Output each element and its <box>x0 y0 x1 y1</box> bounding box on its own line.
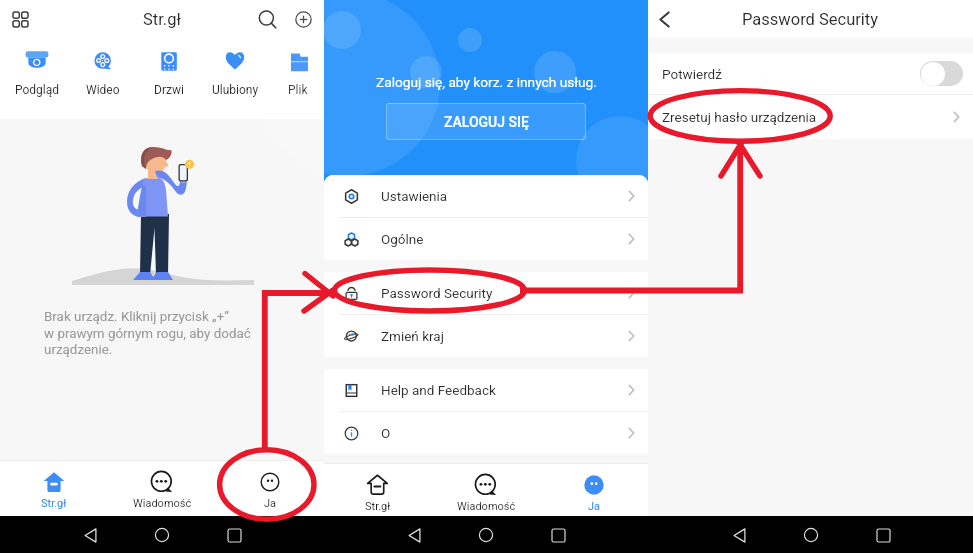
staticText: Podgląd <box>15 83 60 97</box>
staticText: Password Security <box>381 285 629 301</box>
staticText: Ulubiony <box>212 83 259 97</box>
button[interactable]: Ja <box>540 464 648 516</box>
button[interactable]: Podgląd <box>4 38 70 97</box>
button[interactable]: Recents <box>868 520 898 550</box>
button[interactable]: Str.gł <box>0 461 108 516</box>
button[interactable]: Add device <box>285 1 321 37</box>
button[interactable]: Ulubiony <box>202 38 268 97</box>
button[interactable]: Password Security <box>324 272 648 314</box>
staticText: Brak urządz. Kliknij przycisk „+” w praw… <box>44 309 251 357</box>
button[interactable]: Plik <box>268 38 328 97</box>
staticText: Str.gł <box>41 497 67 510</box>
button[interactable]: O <box>324 412 648 454</box>
staticText: Zaloguj się, aby korz. z innych usług. <box>376 74 597 90</box>
button[interactable]: Wideo <box>70 38 136 97</box>
staticText: Wideo <box>86 83 120 97</box>
staticText: Zresetuj hasło urządzenia <box>662 109 954 125</box>
staticText: Wiadomość <box>133 497 192 510</box>
button[interactable]: Ogólne <box>324 218 648 260</box>
button[interactable]: Back <box>399 520 429 550</box>
button[interactable]: Help and Feedback <box>324 369 648 411</box>
staticText: Drzwi <box>154 83 184 97</box>
staticText: Ja <box>588 500 601 513</box>
button[interactable]: Search <box>249 1 285 37</box>
button[interactable]: Zmień kraj <box>324 315 648 357</box>
button[interactable]: Ustawienia <box>324 175 648 217</box>
staticText: Plik <box>288 83 308 97</box>
staticText: Ogólne <box>381 231 629 247</box>
staticText: Str.gł <box>365 500 391 513</box>
button[interactable]: Wiadomość <box>108 461 216 516</box>
button[interactable]: Potwierdź toggle <box>920 61 963 86</box>
button[interactable]: Back <box>724 520 754 550</box>
staticText: ZALOGUJ SIĘ <box>444 114 529 130</box>
button[interactable]: Str.gł <box>324 464 432 516</box>
button[interactable]: Home <box>147 520 177 550</box>
button[interactable]: Wiadomość <box>432 464 540 516</box>
staticText: Ja <box>264 497 277 510</box>
staticText: Str.gł <box>143 10 181 29</box>
button[interactable]: Back <box>648 3 680 35</box>
staticText: O <box>381 425 629 441</box>
button[interactable]: Drzwi <box>136 38 202 97</box>
staticText: Potwierdź <box>662 66 920 82</box>
button[interactable]: Recents <box>219 520 249 550</box>
button[interactable]: Recents <box>543 520 573 550</box>
button[interactable]: Ja <box>216 461 324 516</box>
button[interactable]: Home <box>471 520 501 550</box>
button[interactable]: Back <box>75 520 105 550</box>
button[interactable]: Zresetuj hasło urządzenia <box>648 95 973 139</box>
staticText: Ustawienia <box>381 188 629 204</box>
button[interactable]: Potwierdź <box>648 53 973 94</box>
staticText: Help and Feedback <box>381 382 629 398</box>
button[interactable]: Apps <box>8 7 32 31</box>
staticText: Wiadomość <box>457 500 516 513</box>
button[interactable]: ZALOGUJ SIĘ <box>386 103 586 140</box>
staticText: Password Security <box>742 10 879 29</box>
button[interactable]: Home <box>796 520 826 550</box>
staticText: Zmień kraj <box>381 328 629 344</box>
